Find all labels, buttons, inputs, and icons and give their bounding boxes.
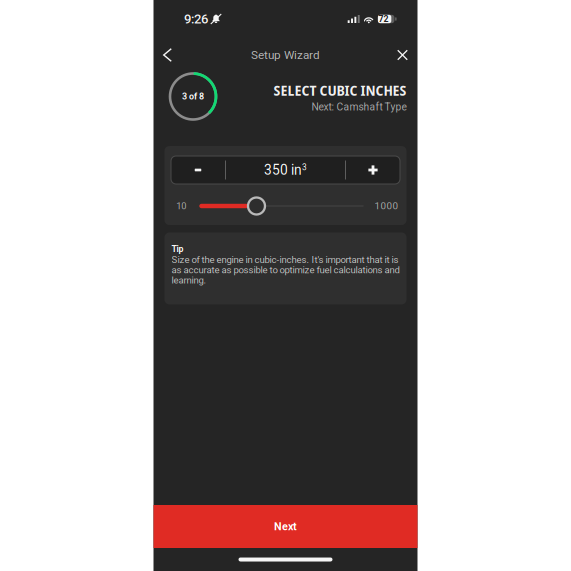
staticText: 72 — [379, 14, 389, 24]
staticText: 10 — [176, 200, 186, 211]
staticText: Next — [274, 520, 297, 533]
staticText: Size of the engine in cubic-inches. It's… — [171, 254, 398, 265]
staticText: 3 of 8 — [182, 91, 204, 102]
staticText: SELECT CUBIC INCHES — [273, 80, 406, 100]
staticText: Setup Wizard — [251, 48, 320, 62]
staticText: 3 — [302, 163, 307, 172]
staticText: 1000 — [374, 200, 398, 212]
staticText: learning. — [171, 275, 206, 286]
staticText: 350 in — [264, 162, 302, 178]
button[interactable]: Close — [389, 41, 415, 69]
button[interactable]: Next — [153, 505, 417, 548]
staticText: as accurate as possible to optimize fuel… — [171, 264, 399, 276]
staticText: Next: Camshaft Type — [311, 101, 406, 113]
staticText: Tip — [171, 244, 183, 254]
staticText: 9:26 — [184, 11, 208, 27]
button[interactable]: Increase — [346, 156, 400, 184]
button[interactable]: Back — [154, 41, 180, 69]
button[interactable]: Decrease — [171, 156, 225, 184]
